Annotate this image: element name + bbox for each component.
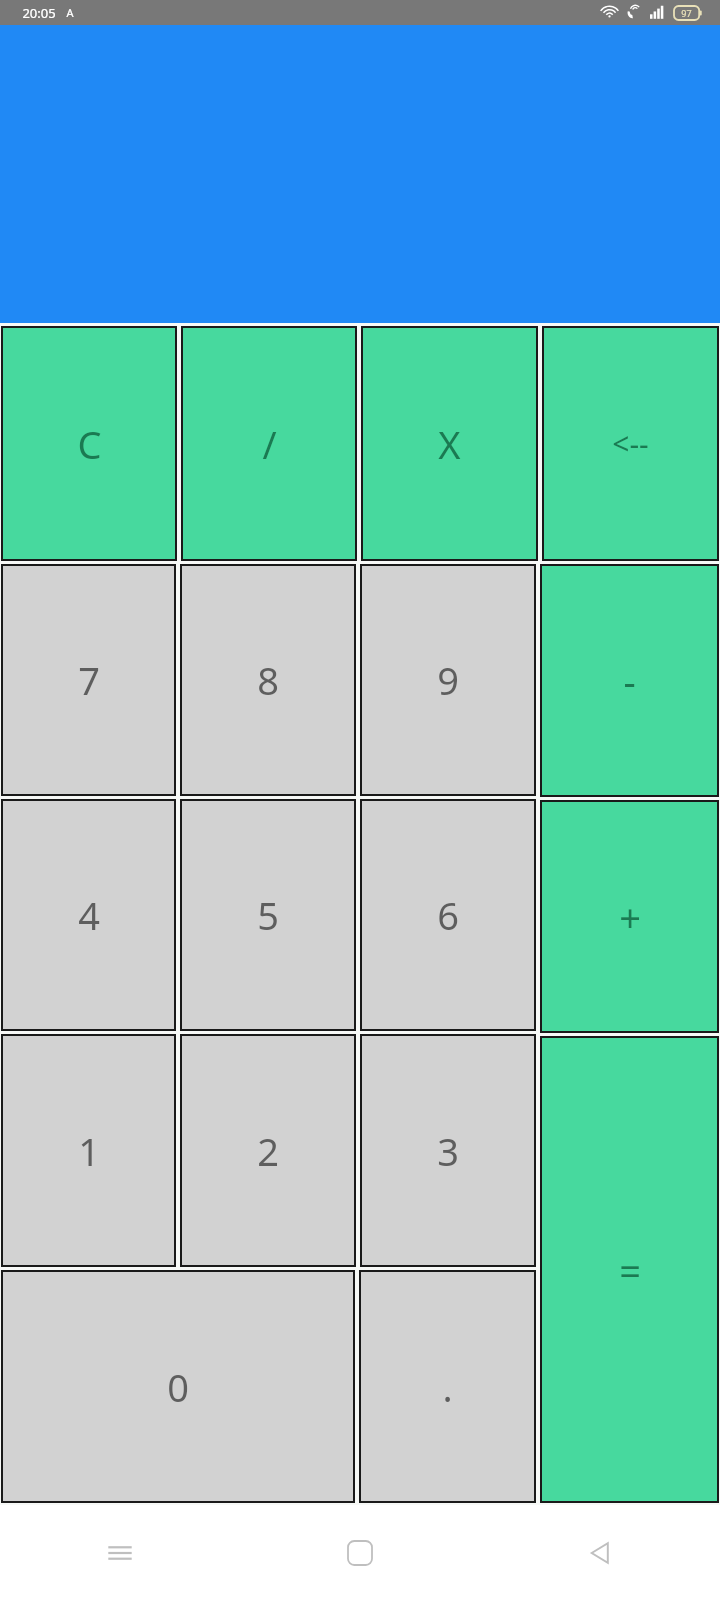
button[interactable]: + (540, 800, 719, 1033)
button[interactable]: 9 (360, 564, 536, 796)
button[interactable]: 6 (360, 799, 536, 1031)
button[interactable]: - (540, 564, 719, 797)
staticText: 2 (257, 1125, 279, 1177)
button[interactable]: 4 (1, 799, 176, 1031)
staticText: - (623, 655, 636, 707)
button[interactable]: 3 (360, 1034, 536, 1267)
button[interactable]: <-- (542, 326, 719, 561)
staticText: 8 (257, 654, 279, 706)
button[interactable]: 8 (180, 564, 356, 796)
staticText: 5 (257, 889, 279, 941)
button[interactable]: 5 (180, 799, 356, 1031)
staticText: A (66, 5, 74, 20)
button[interactable]: 7 (1, 564, 176, 796)
button[interactable]: Home (240, 1505, 480, 1600)
staticText: + (619, 891, 641, 943)
staticText: 9 (437, 654, 459, 706)
staticText: 7 (78, 654, 100, 706)
button[interactable]: 0 (1, 1270, 355, 1503)
staticText: <-- (612, 423, 649, 464)
staticText: 3 (437, 1125, 459, 1177)
button[interactable]: 2 (180, 1034, 356, 1267)
staticText: X (438, 418, 461, 470)
button[interactable]: . (359, 1270, 536, 1503)
staticText: 97 (681, 7, 692, 19)
staticText: 1 (78, 1125, 100, 1177)
staticText: C (77, 418, 102, 470)
staticText: . (442, 1361, 453, 1413)
button[interactable]: / (181, 326, 357, 561)
staticText: 4 (78, 889, 100, 941)
staticText: 20:05 (22, 4, 56, 22)
staticText: 0 (167, 1361, 189, 1413)
button[interactable]: Recent apps (0, 1505, 240, 1600)
button[interactable]: 1 (1, 1034, 176, 1267)
button[interactable]: X (361, 326, 538, 561)
button[interactable]: C (1, 326, 177, 561)
button[interactable]: Back (480, 1505, 720, 1600)
staticText: / (262, 418, 277, 470)
staticText: = (619, 1244, 641, 1296)
button[interactable]: = (540, 1036, 719, 1503)
staticText: 6 (437, 889, 459, 941)
